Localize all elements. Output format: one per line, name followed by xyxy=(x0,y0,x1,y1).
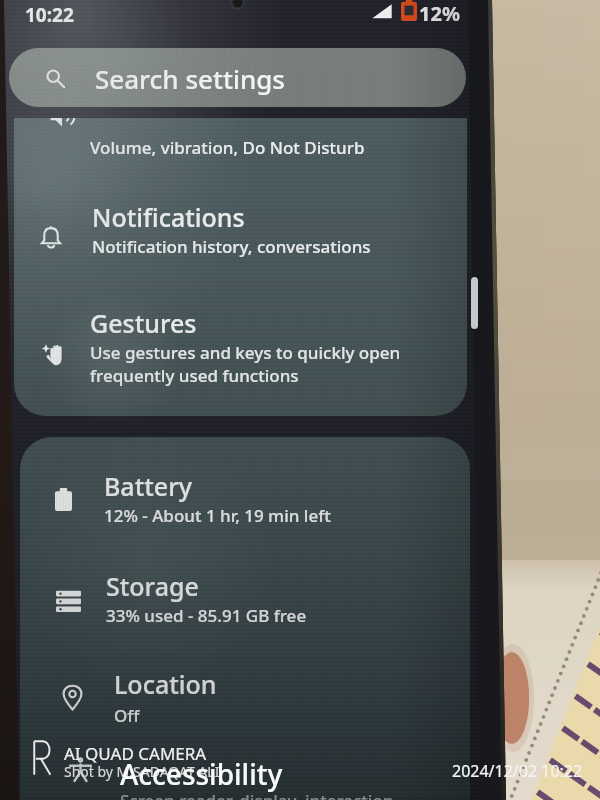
staticText: Accessibility xyxy=(120,755,283,793)
staticText: Notifications xyxy=(92,200,245,234)
staticText: 12% xyxy=(419,0,460,27)
other: Search xyxy=(46,69,65,88)
button[interactable]: Battery xyxy=(20,455,470,537)
button[interactable]: Accessibility xyxy=(20,737,470,800)
staticText: Volume, vibration, Do Not Disturb xyxy=(90,136,365,159)
button[interactable]: Notifications xyxy=(14,196,467,268)
staticText: Battery xyxy=(104,469,192,503)
other: Accessibility xyxy=(68,757,93,787)
staticText: Shot by M.SADAQAT ALI xyxy=(64,762,220,781)
staticText: 10:22 xyxy=(25,2,74,28)
staticText: Off xyxy=(114,704,140,727)
button[interactable]: Gestures xyxy=(14,303,467,399)
other: Notifications xyxy=(39,225,63,249)
other: Battery xyxy=(55,488,72,511)
button[interactable]: Sound xyxy=(14,118,467,156)
other: Storage xyxy=(56,590,81,612)
other: Location xyxy=(63,685,82,710)
staticText: 2024/12/02 10:22 xyxy=(452,760,583,782)
staticText: Search settings xyxy=(95,61,285,96)
staticText: 12% - About 1 hr, 19 min left xyxy=(104,504,331,527)
staticText: Gestures xyxy=(90,306,197,340)
other: Gestures xyxy=(42,341,70,369)
button[interactable]: Storage xyxy=(20,555,470,637)
staticText: Screen reader, display, interaction xyxy=(120,789,394,800)
staticText: Storage xyxy=(106,569,199,603)
other: Sound xyxy=(50,118,76,129)
button[interactable]: Search xyxy=(9,48,466,107)
staticText: AI QUAD CAMERA xyxy=(64,742,207,765)
staticText: Use gestures and keys to quickly open fr… xyxy=(90,341,401,387)
staticText: Notification history, conversations xyxy=(92,235,371,258)
staticText: Location xyxy=(114,667,217,701)
staticText: 33% used - 85.91 GB free xyxy=(106,604,307,627)
button[interactable]: Location xyxy=(20,653,470,735)
